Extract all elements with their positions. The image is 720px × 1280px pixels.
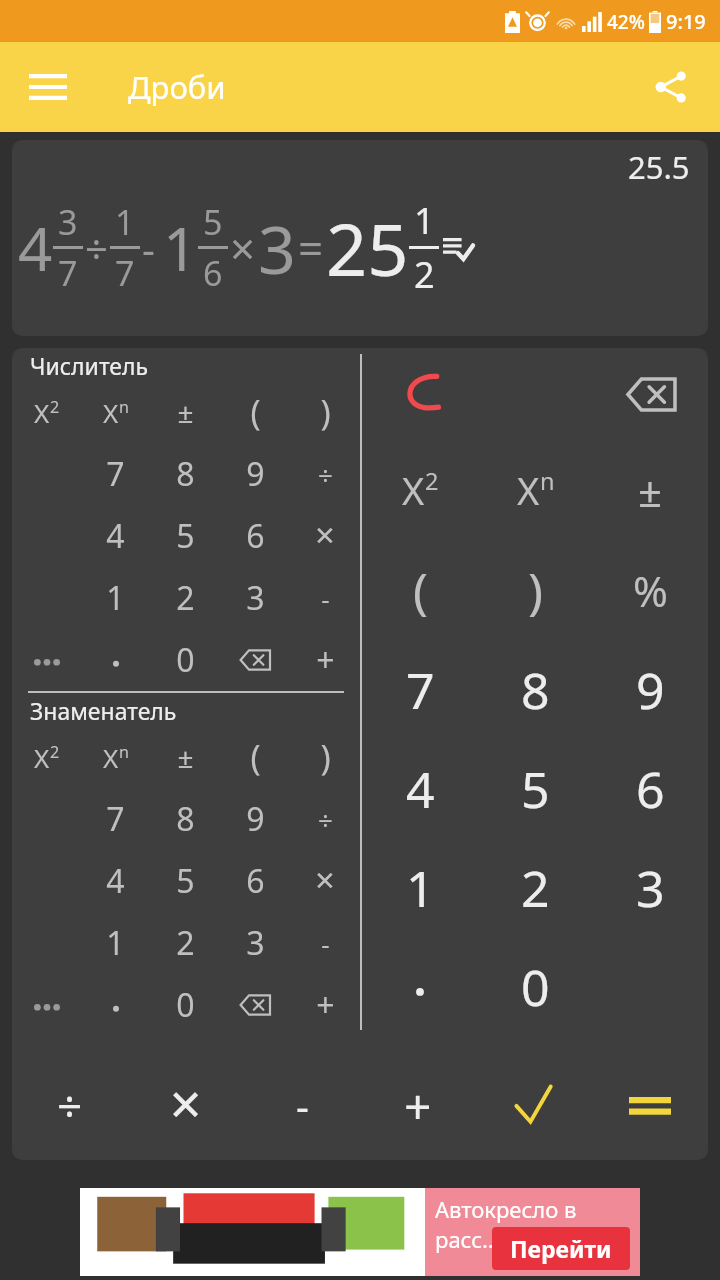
button[interactable]: -	[290, 912, 360, 974]
button[interactable]: +	[290, 629, 360, 691]
staticText: -	[296, 1078, 309, 1132]
button[interactable]: 4	[362, 739, 478, 838]
staticText: 3	[246, 576, 265, 620]
button[interactable]: ✕	[290, 850, 360, 912]
button[interactable]: )	[290, 381, 360, 443]
staticText: 8	[521, 656, 550, 724]
button[interactable]: 8	[150, 443, 220, 505]
button[interactable]: Директ	[80, 1188, 640, 1276]
button[interactable]: 6	[220, 505, 290, 567]
button[interactable]: 9	[593, 640, 708, 739]
staticText: 6	[246, 859, 265, 903]
button[interactable]: ÷	[290, 443, 360, 505]
staticText: )	[320, 734, 331, 780]
button[interactable]: Backspace	[220, 629, 290, 691]
button[interactable]: 5	[150, 505, 220, 567]
button[interactable]: Clear	[362, 348, 478, 440]
button[interactable]: 0	[150, 974, 220, 1036]
button[interactable]: 0	[150, 629, 220, 691]
button[interactable]: 7	[362, 640, 478, 739]
button[interactable]: X	[362, 440, 478, 540]
button[interactable]: Перейти	[510, 1233, 612, 1264]
button[interactable]: More	[12, 974, 81, 1036]
button[interactable]	[81, 629, 150, 691]
button[interactable]: ±	[150, 726, 220, 788]
staticText: Числитель	[30, 350, 149, 381]
button[interactable]: +	[290, 974, 360, 1036]
button[interactable]: X	[81, 381, 150, 443]
button[interactable]: 3	[220, 567, 290, 629]
button[interactable]: ✕	[128, 1050, 244, 1160]
button[interactable]: Equals	[592, 1050, 708, 1160]
button[interactable]: 1	[81, 912, 150, 974]
button[interactable]: ±	[593, 440, 708, 540]
button[interactable]: X	[81, 726, 150, 788]
button[interactable]: 8	[478, 640, 593, 739]
button[interactable]: 7	[81, 443, 150, 505]
button[interactable]: 6	[593, 739, 708, 838]
staticText: 1	[106, 921, 125, 965]
button[interactable]: (	[220, 726, 290, 788]
staticText: n	[119, 741, 129, 763]
button[interactable]: )	[478, 540, 593, 640]
button[interactable]: 3	[593, 838, 708, 937]
button[interactable]: 7	[81, 788, 150, 850]
staticText: 4	[106, 859, 125, 903]
button[interactable]: 9	[220, 788, 290, 850]
button[interactable]: 5	[478, 739, 593, 838]
button[interactable]: 2	[478, 838, 593, 937]
button[interactable]: X	[478, 440, 593, 540]
button[interactable]: 2	[150, 912, 220, 974]
staticText: ÷	[318, 802, 333, 837]
button[interactable]	[362, 937, 478, 1036]
button[interactable]: 8	[150, 788, 220, 850]
button[interactable]	[81, 974, 150, 1036]
staticText: 2	[425, 465, 439, 497]
button[interactable]: Share	[642, 58, 700, 116]
button[interactable]: 4	[81, 505, 150, 567]
button[interactable]: 6	[220, 850, 290, 912]
button[interactable]: 9	[220, 443, 290, 505]
button[interactable]: X	[12, 726, 81, 788]
staticText: X	[103, 395, 119, 430]
staticText: 5	[203, 199, 223, 245]
staticText: 6	[203, 250, 223, 296]
button[interactable]: +	[360, 1050, 476, 1160]
staticText: 4	[406, 755, 435, 823]
button[interactable]: -	[290, 567, 360, 629]
button[interactable]: 25.5	[12, 140, 708, 336]
button[interactable]: ✕	[290, 505, 360, 567]
staticText: 7	[58, 250, 78, 296]
staticText: 42%	[607, 9, 645, 35]
button[interactable]: ±	[150, 381, 220, 443]
button[interactable]: X	[12, 381, 81, 443]
button[interactable]: ÷	[12, 1050, 128, 1160]
button[interactable]: 0	[478, 937, 593, 1036]
staticText: 0	[521, 953, 550, 1021]
staticText: ÷	[57, 1075, 83, 1135]
button[interactable]: %	[593, 540, 708, 640]
button[interactable]: -	[244, 1050, 360, 1160]
button[interactable]: 1	[362, 838, 478, 937]
staticText: 7	[106, 797, 125, 841]
button[interactable]: )	[290, 726, 360, 788]
button[interactable]: Backspace	[220, 974, 290, 1036]
button[interactable]: 1	[81, 567, 150, 629]
button[interactable]: 4	[81, 850, 150, 912]
staticText: 7	[406, 656, 435, 724]
button[interactable]: Square root	[476, 1050, 592, 1160]
button[interactable]: 2	[150, 567, 220, 629]
button[interactable]: More	[12, 629, 81, 691]
button[interactable]: Backspace	[593, 348, 708, 440]
staticText: +	[404, 1073, 432, 1138]
button[interactable]: (	[362, 540, 478, 640]
button[interactable]: ÷	[290, 788, 360, 850]
staticText: )	[320, 389, 331, 435]
staticText: 6	[246, 514, 265, 558]
staticText: +	[316, 983, 335, 1027]
button[interactable]: 3	[220, 912, 290, 974]
button[interactable]: (	[220, 381, 290, 443]
button[interactable]: Menu	[18, 57, 78, 117]
button[interactable]: 5	[150, 850, 220, 912]
